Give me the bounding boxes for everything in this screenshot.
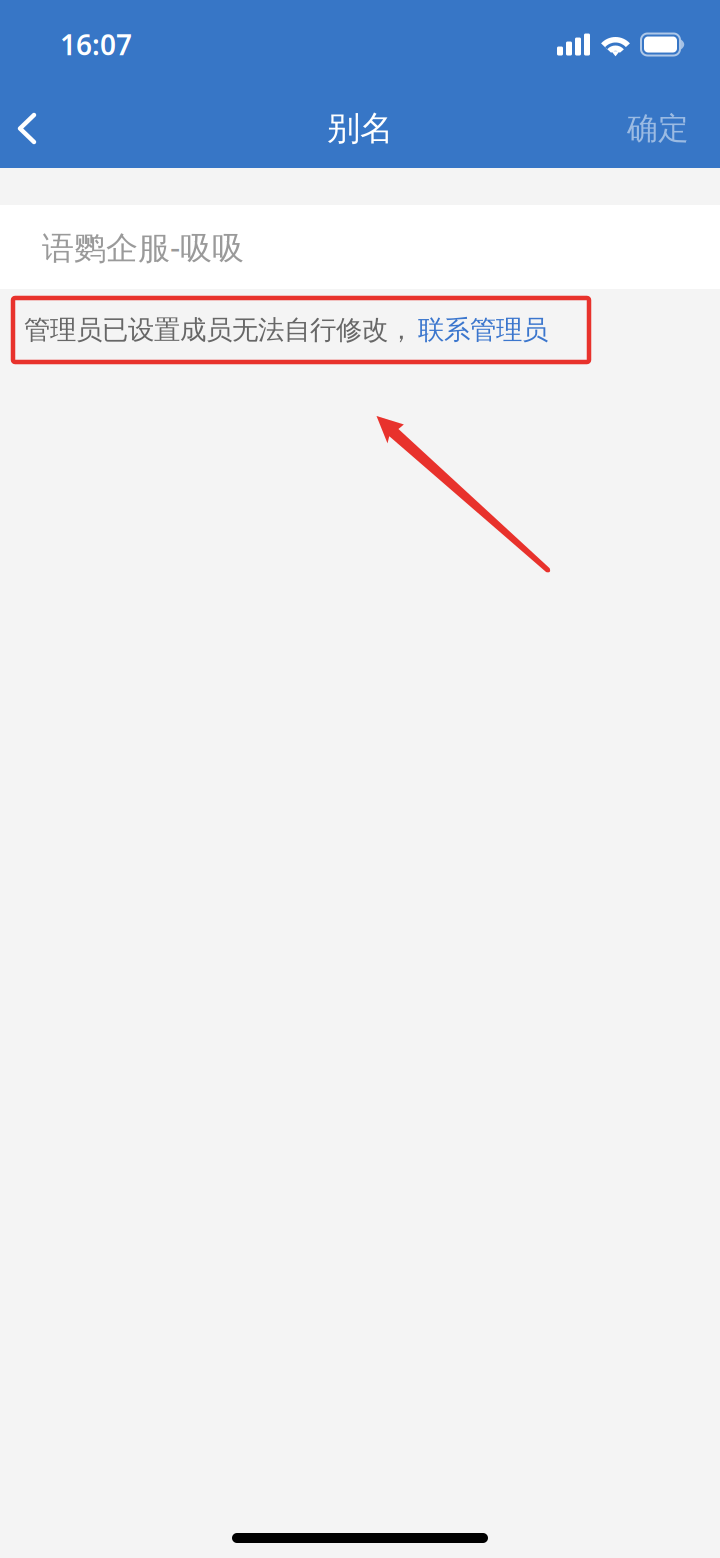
staticText: 联系管理员 xyxy=(418,313,548,347)
staticText: 语鹦企服-吸吸 xyxy=(42,226,244,268)
button[interactable]: Back xyxy=(0,89,54,168)
button[interactable]: 确定 xyxy=(596,89,720,168)
staticText: 别名 xyxy=(327,108,393,149)
button[interactable]: 联系管理员 xyxy=(418,313,548,347)
staticText: 确定 xyxy=(627,110,689,147)
staticText: 16:07 xyxy=(60,26,132,63)
staticText: 管理员已设置成员无法自行修改， xyxy=(24,313,414,347)
